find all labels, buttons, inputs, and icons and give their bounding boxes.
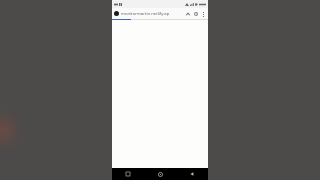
button[interactable]: Site information bbox=[114, 11, 119, 16]
button[interactable]: Back bbox=[176, 168, 208, 180]
button[interactable]: Home bbox=[144, 168, 176, 180]
button[interactable]: More options bbox=[200, 11, 206, 17]
button[interactable]: monitormartin.netlify.ap bbox=[121, 11, 183, 17]
button[interactable]: Recent apps bbox=[112, 168, 144, 180]
button[interactable]: Profile bbox=[184, 10, 191, 17]
button[interactable]: Reload page bbox=[192, 10, 199, 17]
